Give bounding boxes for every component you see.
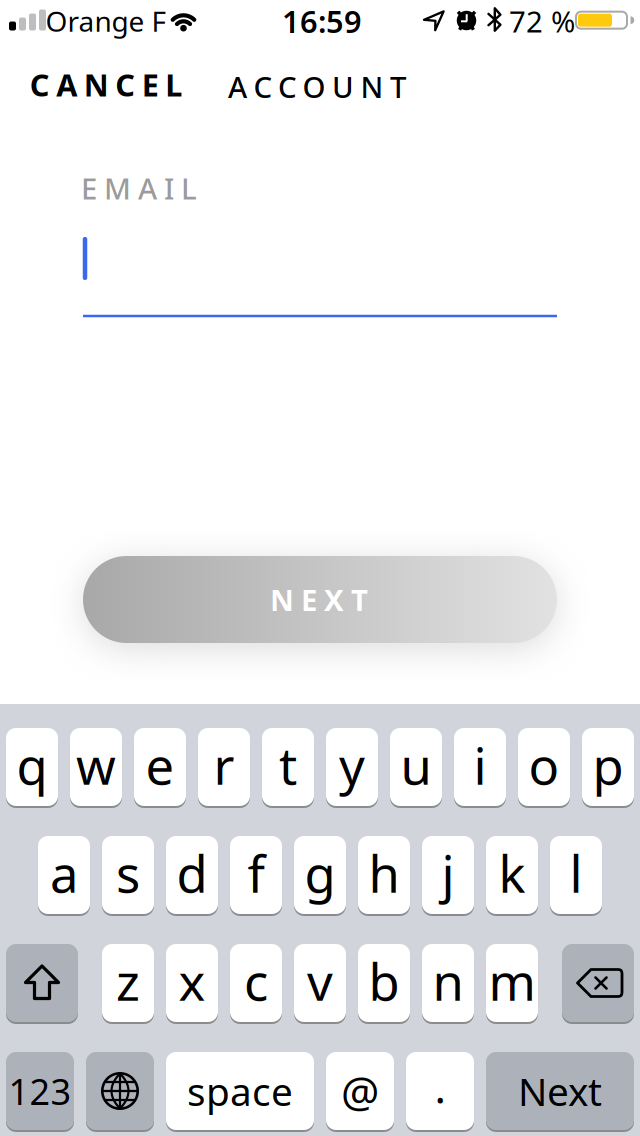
staticText: ACCOUNT	[228, 67, 406, 106]
staticText: .	[434, 1059, 445, 1115]
staticText: space	[187, 1065, 293, 1117]
button[interactable]: o	[518, 728, 570, 806]
button[interactable]	[6, 944, 78, 1022]
staticText: v	[307, 947, 333, 1015]
staticText: e	[145, 731, 174, 799]
button[interactable]	[86, 1052, 154, 1130]
staticText: 72 %	[509, 1, 575, 40]
staticText: m	[488, 947, 535, 1015]
button[interactable]: y	[326, 728, 378, 806]
button[interactable]: .	[406, 1052, 474, 1130]
button[interactable]: k	[486, 836, 538, 914]
staticText: Orange F	[45, 2, 166, 40]
staticText: n	[432, 947, 463, 1015]
button[interactable]: m	[486, 944, 538, 1022]
button[interactable]: n	[422, 944, 474, 1022]
button[interactable]: h	[358, 836, 410, 914]
staticText: c	[244, 947, 268, 1015]
staticText: d	[176, 839, 207, 907]
staticText: b	[368, 947, 399, 1015]
button[interactable]: l	[550, 836, 602, 914]
staticText: u	[400, 731, 431, 799]
staticText: EMAIL	[81, 168, 197, 207]
button[interactable]: e	[134, 728, 186, 806]
staticText: CANCEL	[30, 64, 182, 105]
staticText: i	[473, 731, 486, 799]
staticText: w	[76, 731, 116, 799]
staticText: 123	[8, 1067, 71, 1115]
button[interactable]: d	[166, 836, 218, 914]
button[interactable]: b	[358, 944, 410, 1022]
button[interactable]	[83, 227, 557, 317]
button[interactable]: CANCEL	[30, 64, 182, 105]
button[interactable]: @	[326, 1052, 394, 1130]
button[interactable]: Next	[486, 1052, 634, 1130]
staticText: NEXT	[270, 580, 368, 619]
staticText: a	[50, 839, 78, 907]
button[interactable]: z	[102, 944, 154, 1022]
button[interactable]: w	[70, 728, 122, 806]
staticText: g	[304, 839, 335, 907]
button[interactable]: a	[38, 836, 90, 914]
staticText: l	[569, 839, 582, 907]
staticText: t	[279, 731, 297, 799]
button[interactable]: NEXT	[83, 556, 557, 643]
button[interactable]: i	[454, 728, 506, 806]
staticText: o	[528, 731, 559, 799]
button[interactable]: q	[6, 728, 58, 806]
button[interactable]	[562, 944, 634, 1022]
staticText: f	[247, 839, 264, 907]
button[interactable]: s	[102, 836, 154, 914]
button[interactable]: t	[262, 728, 314, 806]
button[interactable]: f	[230, 836, 282, 914]
button[interactable]: x	[166, 944, 218, 1022]
button[interactable]: u	[390, 728, 442, 806]
staticText: p	[592, 731, 623, 799]
staticText: s	[116, 839, 140, 907]
button[interactable]: c	[230, 944, 282, 1022]
staticText: @	[341, 1063, 379, 1119]
staticText: x	[178, 947, 205, 1015]
staticText: j	[441, 839, 454, 907]
staticText: z	[116, 947, 140, 1015]
staticText: Next	[518, 1065, 602, 1117]
button[interactable]: p	[582, 728, 634, 806]
staticText: q	[16, 731, 47, 799]
staticText: h	[368, 839, 399, 907]
staticText: y	[339, 731, 365, 799]
button[interactable]: 123	[6, 1052, 74, 1130]
button[interactable]: space	[166, 1052, 314, 1130]
button[interactable]: g	[294, 836, 346, 914]
staticText: 16:59	[282, 1, 362, 41]
button[interactable]: r	[198, 728, 250, 806]
staticText: r	[213, 731, 234, 799]
button[interactable]: j	[422, 836, 474, 914]
staticText: k	[498, 839, 525, 907]
button[interactable]: v	[294, 944, 346, 1022]
